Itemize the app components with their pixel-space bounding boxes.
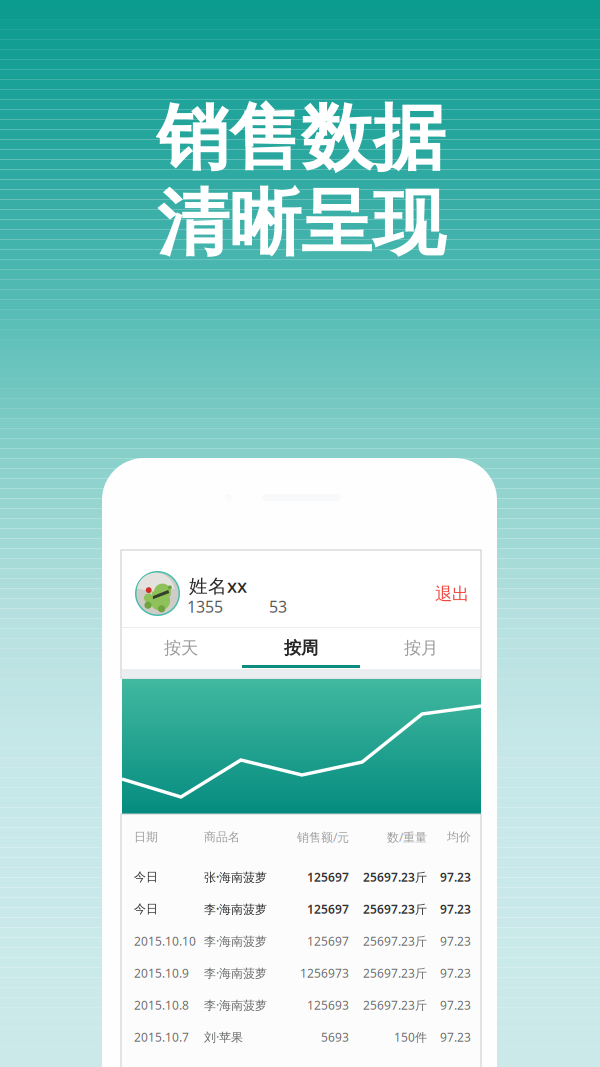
staticText: 97.23 [440, 933, 471, 949]
staticText: 按天 [164, 637, 198, 659]
staticText: 2015.10.9 [134, 965, 189, 981]
staticText: 销售数据 [157, 94, 445, 182]
staticText: 今日 [134, 870, 158, 884]
staticText: 25697.23斤 [363, 997, 427, 1013]
staticText: 数/重量 [387, 829, 427, 845]
staticText: 97.23 [440, 901, 471, 917]
staticText: 日期 [134, 830, 158, 844]
staticText: 均价 [447, 830, 471, 844]
staticText: 5693 [321, 1029, 349, 1045]
staticText: 25697.23斤 [363, 869, 427, 885]
staticText: 25697.23斤 [363, 933, 427, 949]
staticText: 53 [269, 596, 287, 617]
staticText: 125697 [307, 901, 349, 917]
staticText: 李·海南菠萝 [204, 933, 267, 949]
staticText: 25697.23斤 [363, 901, 427, 917]
staticText: 2015.10.7 [134, 1029, 189, 1045]
staticText: 销售额/元 [297, 829, 349, 845]
staticText: 按周 [284, 637, 318, 659]
staticText: 125697 [307, 933, 349, 949]
staticText: 2015.10.8 [134, 997, 189, 1013]
button[interactable]: 按周 [241, 628, 361, 668]
staticText: 25697.23斤 [363, 965, 427, 981]
button[interactable]: 按月 [361, 628, 481, 668]
staticText: 97.23 [440, 997, 471, 1013]
staticText: 125693 [307, 997, 349, 1013]
staticText: 按月 [404, 637, 438, 659]
staticText: 150件 [394, 1029, 427, 1045]
button[interactable]: 按天 [121, 628, 241, 668]
button[interactable]: 退出 [429, 582, 469, 606]
staticText: 97.23 [440, 1029, 471, 1045]
staticText: 李·海南菠萝 [204, 901, 267, 917]
staticText: 1355 [187, 596, 223, 617]
staticText: 李·海南菠萝 [204, 965, 267, 981]
staticText: 商品名 [204, 830, 240, 844]
staticText: 125697 [307, 869, 349, 885]
staticText: 李·海南菠萝 [204, 997, 267, 1013]
staticText: 刘·苹果 [204, 1029, 243, 1045]
staticText: 退出 [435, 583, 469, 605]
staticText: 清晰呈现 [157, 179, 445, 268]
staticText: 1256973 [300, 965, 349, 981]
staticText: 97.23 [440, 869, 471, 885]
staticText: 2015.10.10 [134, 933, 196, 949]
staticText: 今日 [134, 902, 158, 916]
staticText: 97.23 [440, 965, 471, 981]
staticText: 张·海南菠萝 [204, 869, 267, 885]
staticText: 姓名xx [189, 573, 247, 598]
